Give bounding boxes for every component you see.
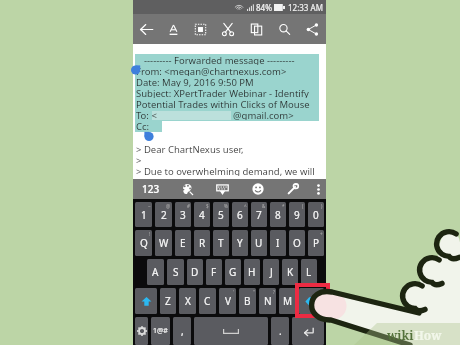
staticText: V [225, 294, 231, 308]
button[interactable]: F [206, 259, 222, 285]
button[interactable]: 123 [133, 179, 169, 199]
staticText: ) [321, 203, 323, 209]
button[interactable]: X [179, 288, 196, 314]
staticText: 6 [237, 208, 243, 222]
button[interactable]: T [213, 230, 229, 256]
button[interactable]: More options [310, 179, 326, 199]
staticText: C [204, 294, 211, 308]
staticText: N [264, 294, 272, 308]
button[interactable]: P [308, 230, 324, 256]
button[interactable]: D [187, 259, 203, 285]
staticText: @ [166, 203, 171, 209]
button[interactable]: . [271, 317, 289, 345]
staticText: R [199, 236, 206, 250]
staticText: > Due to overwhelming demand, we will [136, 165, 315, 176]
staticText: . [279, 324, 282, 338]
button[interactable]: Cut [214, 14, 242, 44]
staticText: H [248, 265, 256, 279]
staticText: ( [302, 203, 304, 209]
button[interactable]: L [301, 259, 317, 285]
button[interactable]: Copy [242, 14, 270, 44]
button[interactable]: V [219, 288, 236, 314]
staticText: O [293, 236, 301, 250]
staticText: 2 [161, 208, 167, 222]
button[interactable]: Keyboard settings [275, 179, 310, 199]
button[interactable]: H [244, 259, 260, 285]
button[interactable]: S [167, 259, 184, 285]
staticText: T [218, 236, 224, 250]
staticText: 1 [141, 208, 147, 222]
staticText: S [173, 265, 179, 279]
button[interactable]: Format text [160, 14, 187, 44]
staticText: D [191, 265, 199, 279]
button[interactable]: Enter [292, 317, 324, 345]
button[interactable]: G [225, 259, 241, 285]
staticText: B [244, 294, 251, 308]
staticText: Subject: XPertTrader Webinar - Identify [136, 87, 309, 98]
button[interactable]: 1@# [151, 317, 170, 345]
button[interactable]: , [173, 317, 191, 345]
staticText: > Dear ChartNexus user, [136, 143, 244, 154]
staticText: Y [237, 236, 243, 250]
button[interactable]: Emoji [240, 179, 275, 199]
button[interactable]: E [175, 230, 191, 256]
button[interactable]: Shift [135, 288, 157, 314]
button[interactable]: K [282, 259, 298, 285]
button[interactable]: 7 [251, 202, 267, 227]
button[interactable]: Theme [169, 179, 205, 199]
staticText: ~ [148, 203, 151, 209]
button[interactable]: I [270, 230, 286, 256]
staticText: > [136, 154, 142, 165]
button[interactable]: R [194, 230, 210, 256]
button[interactable]: 2 [155, 202, 172, 227]
button[interactable]: M [279, 288, 296, 314]
button[interactable]: J [263, 259, 279, 285]
button[interactable]: Keyboard settings [135, 317, 148, 345]
staticText: @gmail.com> [233, 109, 294, 120]
button[interactable]: Y [232, 230, 248, 256]
button[interactable]: Keyboard layout [205, 179, 240, 199]
staticText: ' [233, 289, 235, 295]
staticText: * [282, 203, 285, 209]
button[interactable]: Q [135, 230, 152, 256]
button[interactable]: Back [133, 14, 160, 44]
staticText: 84% [256, 2, 272, 13]
staticText: , [181, 324, 184, 338]
staticText: % [224, 203, 228, 209]
button[interactable]: 5 [213, 202, 229, 227]
staticText: 7 [256, 208, 262, 222]
button[interactable]: 4 [194, 202, 210, 227]
button[interactable]: Search [270, 14, 298, 44]
button[interactable]: Select all [187, 14, 214, 44]
button[interactable]: W [155, 230, 172, 256]
button[interactable]: O [289, 230, 305, 256]
button[interactable]: B [239, 288, 256, 314]
staticText: From: <megan@chartnexus.com> [136, 65, 287, 76]
staticText: 3 [180, 208, 186, 222]
staticText: J [270, 265, 273, 279]
button[interactable]: 8 [270, 202, 286, 227]
button[interactable]: Z [160, 288, 176, 314]
button[interactable] [194, 317, 268, 345]
staticText: 9 [294, 208, 300, 222]
staticText: Q [140, 236, 148, 250]
button[interactable]: N [259, 288, 276, 314]
button[interactable]: Backspace [299, 288, 324, 314]
button[interactable]: 0 [308, 202, 324, 227]
button[interactable]: 9 [289, 202, 305, 227]
staticText: 1@# [153, 326, 168, 336]
button[interactable]: 1 [135, 202, 152, 227]
button[interactable]: Share [298, 14, 326, 44]
staticText: Cc: [136, 120, 150, 131]
staticText: M [283, 294, 293, 308]
button[interactable]: U [251, 230, 267, 256]
staticText: X [185, 294, 191, 308]
staticText: wiki [387, 327, 414, 343]
staticText: 5 [218, 208, 224, 222]
staticText: & [262, 203, 266, 209]
staticText: Z [165, 294, 171, 308]
button[interactable]: 6 [232, 202, 248, 227]
button[interactable]: A [147, 259, 164, 285]
button[interactable]: 3 [175, 202, 191, 227]
button[interactable]: C [199, 288, 216, 314]
